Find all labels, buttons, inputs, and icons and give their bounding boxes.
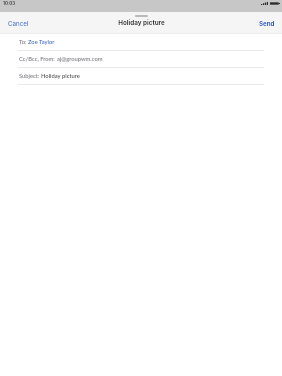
staticText: Holiday picture bbox=[118, 19, 165, 27]
staticText: aj@groupwm.com bbox=[57, 55, 103, 62]
staticText: Zoe Taylor bbox=[28, 38, 55, 45]
staticText: Cc/Bcc, From: bbox=[19, 55, 57, 62]
staticText: Holiday picture bbox=[41, 72, 80, 79]
staticText: 10:03 bbox=[3, 1, 16, 6]
staticText: To: bbox=[19, 38, 28, 45]
button[interactable]: Send bbox=[251, 15, 282, 31]
button[interactable]: Subject: bbox=[0, 68, 282, 85]
staticText: Subject: bbox=[19, 72, 41, 79]
button[interactable]: Cancel bbox=[0, 15, 37, 31]
button[interactable]: Cc/Bcc, From: bbox=[0, 51, 282, 68]
button[interactable]: To: bbox=[0, 34, 282, 51]
